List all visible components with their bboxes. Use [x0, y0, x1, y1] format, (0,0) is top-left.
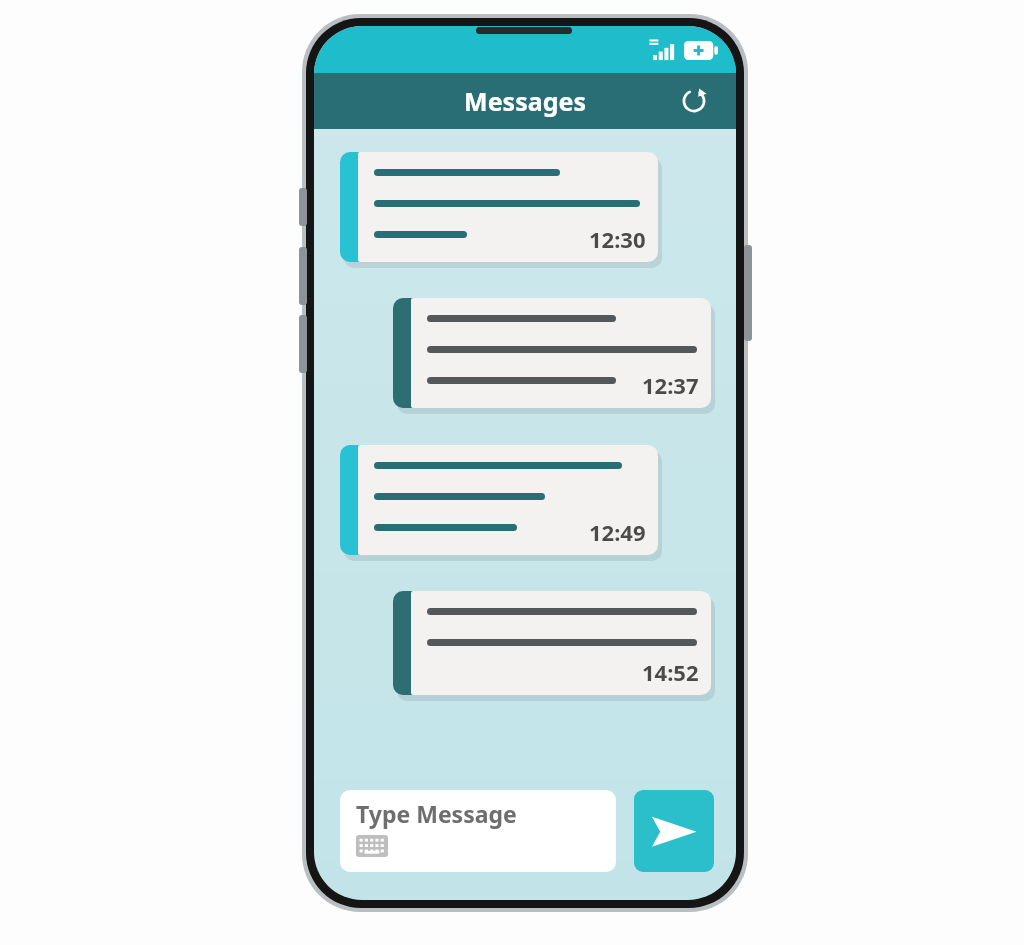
button[interactable]: Send: [634, 790, 714, 872]
staticText: 12:30: [589, 224, 646, 254]
staticText: 12:49: [589, 517, 646, 547]
staticText: Messages: [464, 84, 586, 118]
staticText: 14:52: [642, 657, 699, 687]
staticText: 12:37: [642, 370, 699, 400]
button[interactable]: 12:49: [340, 445, 658, 555]
button[interactable]: 12:30: [340, 152, 658, 262]
button[interactable]: Type Message: [340, 790, 616, 872]
staticText: Type Message: [356, 798, 517, 829]
button[interactable]: Refresh: [674, 81, 714, 121]
button[interactable]: 12:37: [393, 298, 711, 408]
button[interactable]: 14:52: [393, 591, 711, 695]
